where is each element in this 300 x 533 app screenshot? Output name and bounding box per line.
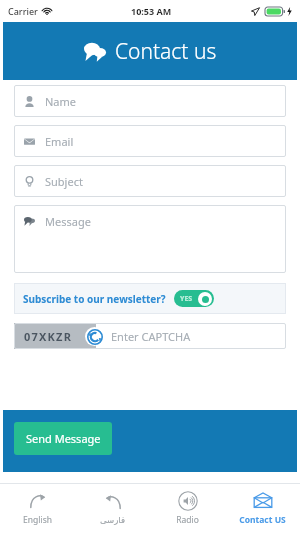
staticText: Subscribe to our newsletter? <box>23 292 166 306</box>
button[interactable]: Message <box>14 205 286 273</box>
staticText: English <box>23 514 52 526</box>
button[interactable]: Subject <box>14 165 286 197</box>
staticText: Subject <box>45 174 83 189</box>
button[interactable]: Name <box>14 85 286 117</box>
staticText: Radio <box>176 514 199 526</box>
staticText: YES <box>180 294 193 304</box>
staticText: 10:53 AM <box>131 5 172 17</box>
staticText: Message <box>45 214 91 229</box>
staticText: Name <box>45 94 77 109</box>
button[interactable]: 07XKZR <box>14 323 286 349</box>
button[interactable]: Radio <box>150 484 225 533</box>
staticText: Contact US <box>239 514 286 526</box>
staticText: فارسی <box>100 515 125 525</box>
staticText: Contact us <box>115 37 217 66</box>
staticText: Email <box>45 134 74 149</box>
staticText: Send Message <box>26 431 101 446</box>
button[interactable]: فارسی <box>75 484 150 533</box>
button[interactable]: Newsletter toggle on <box>174 290 214 307</box>
button[interactable]: Refresh CAPTCHA <box>85 327 104 346</box>
staticText: 07XKZR <box>24 329 73 344</box>
staticText: Carrier <box>8 5 38 17</box>
button[interactable]: Send Message <box>14 422 112 455</box>
staticText: Enter CAPTCHA <box>111 329 191 344</box>
button[interactable]: English <box>0 484 75 533</box>
button[interactable]: Contact US <box>225 484 300 533</box>
button[interactable]: Subscribe to our newsletter? <box>14 283 286 314</box>
button[interactable]: Email <box>14 125 286 157</box>
